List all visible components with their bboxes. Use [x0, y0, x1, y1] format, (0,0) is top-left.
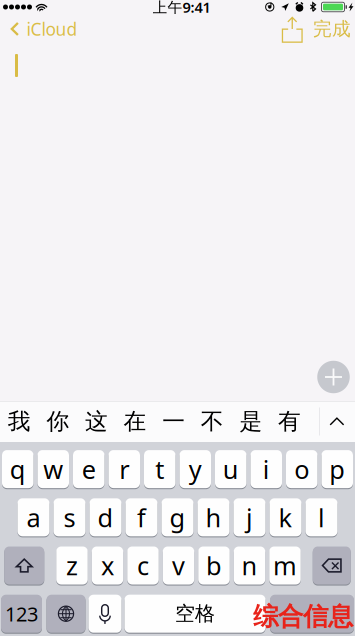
button[interactable]: 有	[270, 401, 309, 442]
button[interactable]: 你	[39, 401, 77, 442]
button[interactable]: e	[73, 449, 104, 489]
button[interactable]: f	[125, 497, 157, 537]
button[interactable]: u	[215, 449, 246, 489]
button[interactable]: i	[250, 449, 282, 489]
staticText: t	[155, 452, 164, 486]
staticText: k	[278, 500, 292, 534]
staticText: w	[43, 452, 63, 486]
staticText: q	[10, 452, 26, 486]
staticText: m	[273, 549, 297, 582]
button[interactable]: w	[37, 449, 69, 489]
button[interactable]: 一	[154, 401, 193, 442]
button[interactable]: 空格	[124, 594, 265, 634]
staticText: s	[63, 500, 75, 534]
staticText: z	[66, 549, 78, 582]
staticText: 你	[46, 408, 69, 435]
button[interactable]: g	[161, 497, 193, 537]
button[interactable]: a	[17, 497, 49, 537]
button[interactable]: h	[197, 497, 229, 537]
button[interactable]: 完成	[313, 13, 355, 44]
staticText: r	[119, 452, 129, 486]
staticText: e	[82, 452, 96, 486]
button[interactable]: d	[89, 497, 121, 537]
staticText: f	[137, 500, 146, 534]
button[interactable]: Delete	[313, 545, 351, 586]
button[interactable]: q	[2, 449, 33, 489]
button[interactable]: n	[234, 545, 265, 586]
button[interactable]: r	[108, 449, 140, 489]
button[interactable]: iCloud	[0, 13, 83, 44]
staticText: 是	[239, 408, 262, 435]
button[interactable]: c	[127, 545, 159, 586]
button[interactable]: x	[92, 545, 123, 586]
button[interactable]: v	[163, 545, 194, 586]
button[interactable]: Dictation	[88, 594, 121, 634]
staticText: 这	[85, 408, 108, 435]
button[interactable]: j	[233, 497, 265, 537]
button[interactable]: y	[179, 449, 211, 489]
staticText: 123	[5, 600, 38, 627]
staticText: a	[26, 500, 40, 534]
staticText: d	[97, 500, 113, 534]
staticText: 综合信息	[253, 601, 353, 632]
staticText: 上午9:41	[152, 0, 210, 17]
button[interactable]: 在	[116, 401, 154, 442]
staticText: u	[223, 452, 239, 486]
staticText: 在	[124, 408, 147, 435]
button[interactable]: More candidates	[319, 401, 355, 442]
button[interactable]: z	[56, 545, 88, 586]
staticText: l	[318, 500, 325, 534]
button[interactable]: Return	[270, 594, 354, 634]
button[interactable]: Next keyboard	[46, 594, 85, 634]
staticText: x	[101, 549, 114, 582]
staticText: 不	[201, 408, 224, 435]
button[interactable]: s	[53, 497, 85, 537]
button[interactable]: 这	[77, 401, 116, 442]
staticText: n	[241, 549, 257, 582]
button[interactable]: 我	[0, 401, 39, 442]
staticText: i	[263, 452, 270, 486]
button[interactable]: Shift	[4, 545, 44, 586]
button[interactable]: 123	[1, 594, 42, 634]
staticText: g	[169, 500, 185, 534]
staticText: 我	[8, 408, 31, 435]
staticText: 一	[162, 408, 185, 435]
staticText: j	[246, 500, 253, 534]
staticText: 空格	[175, 601, 215, 626]
staticText: iCloud	[26, 17, 77, 40]
button[interactable]: b	[198, 545, 230, 586]
button[interactable]: m	[269, 545, 301, 586]
button[interactable]: p	[321, 449, 353, 489]
staticText: 完成	[313, 17, 351, 40]
staticText: b	[206, 549, 222, 582]
button[interactable]: o	[286, 449, 317, 489]
button[interactable]: t	[144, 449, 175, 489]
staticText: c	[137, 549, 149, 582]
button[interactable]: Add attachment	[315, 359, 351, 395]
staticText: v	[172, 549, 185, 582]
staticText: y	[189, 452, 202, 486]
button[interactable]: 不	[193, 401, 232, 442]
staticText: h	[205, 500, 221, 534]
button[interactable]: Share	[280, 15, 304, 42]
staticText: p	[329, 452, 345, 486]
button[interactable]: k	[269, 497, 301, 537]
button[interactable]: 是	[232, 401, 270, 442]
staticText: 有	[278, 408, 301, 435]
staticText: o	[294, 452, 309, 486]
button[interactable]: l	[305, 497, 337, 537]
